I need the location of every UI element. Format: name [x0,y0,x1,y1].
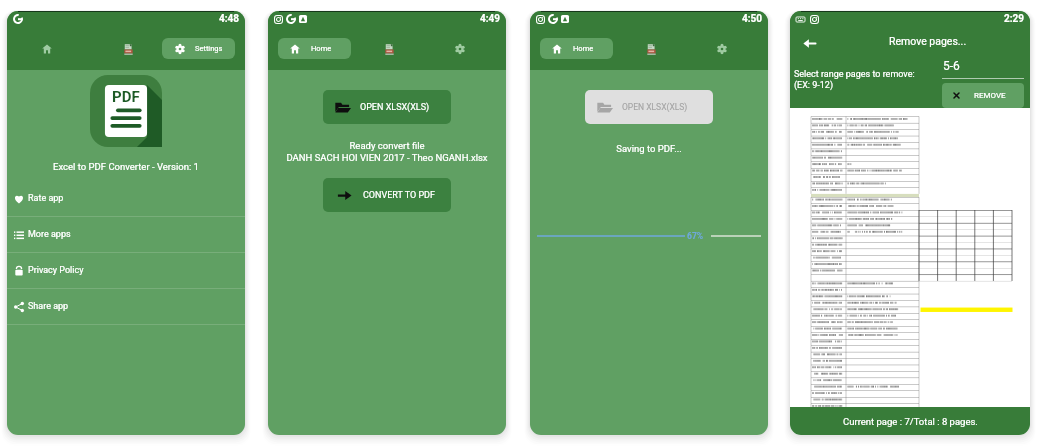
staticText: Ready convert file [268,140,506,151]
staticText: Select range pages to remove: [794,69,915,80]
staticText: OPEN XLSX(XLS) [622,102,688,112]
staticText: Settings [195,44,223,53]
staticText: PDF [112,88,140,106]
staticText: 5-6 [943,59,960,73]
button[interactable]: OPEN XLSX(XLS) [323,90,451,124]
staticText: Current page : 7/Total : 8 pages. [843,416,978,427]
button[interactable]: Home [35,37,59,61]
button[interactable]: Settings [162,38,235,59]
staticText: Share app [28,301,69,312]
staticText: 2:29 [1004,13,1025,25]
staticText: Privacy Policy [28,265,84,276]
staticText: Remove pages... [889,35,967,47]
staticText: 4:50 [742,13,763,25]
button[interactable]: Home [278,38,351,59]
staticText: REMOVE [974,91,1006,100]
button[interactable]: Privacy Policy [7,253,245,288]
button[interactable]: PDF files [377,37,401,61]
button[interactable]: Settings [710,37,734,61]
button[interactable]: More apps [7,217,245,252]
button[interactable]: OPEN XLSX(XLS) [585,90,713,124]
staticText: 67% [687,231,704,241]
button[interactable]: PDF files [116,37,140,61]
staticText: Excel to PDF Converter - Version: 1 [7,161,245,172]
button[interactable]: REMOVE [942,83,1024,108]
staticText: Rate app [28,193,64,204]
button[interactable]: PDF files [639,37,663,61]
staticText: 4:48 [219,13,240,25]
staticText: DANH SACH HOI VIEN 2017 - Theo NGANH.xls… [268,152,506,163]
staticText: OPEN XLSX(XLS) [360,102,430,113]
staticText: More apps [28,229,71,240]
staticText: Saving to PDF... [530,143,768,154]
button[interactable]: Rate app [7,181,245,216]
button[interactable]: Share app [7,289,245,324]
button[interactable]: Back [800,34,818,52]
button[interactable]: Settings [448,37,472,61]
staticText: Home [573,44,594,53]
staticText: Home [311,44,332,53]
button[interactable]: CONVERT TO PDF [323,178,451,212]
staticText: CONVERT TO PDF [363,190,435,201]
staticText: (EX: 9-12) [794,80,834,91]
staticText: 4:49 [480,13,501,25]
button[interactable]: Home [540,38,613,59]
